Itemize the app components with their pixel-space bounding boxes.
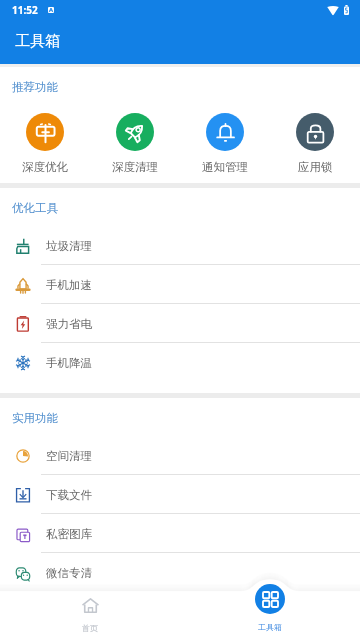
staticText: 垃圾清理 — [46, 239, 92, 253]
staticText: 深度清理 — [112, 160, 158, 174]
staticText: 深度优化 — [22, 160, 68, 174]
staticText: 工具箱 — [15, 32, 60, 51]
button[interactable]: 深度清理 — [90, 113, 180, 174]
staticText: 工具箱 — [258, 622, 282, 632]
staticText: 私密图库 — [46, 527, 92, 541]
button[interactable]: 私密图库 — [0, 514, 360, 553]
staticText: 微信专清 — [46, 566, 92, 580]
staticText: 空间清理 — [46, 449, 92, 463]
staticText: 优化工具 — [12, 201, 58, 215]
button[interactable]: 手机降温 — [0, 343, 360, 382]
button[interactable]: 首页 — [45, 598, 135, 633]
staticText: 首页 — [82, 623, 98, 633]
staticText: 推荐功能 — [12, 80, 58, 94]
button[interactable]: 应用锁 — [270, 113, 360, 174]
staticText: 手机加速 — [46, 278, 92, 292]
staticText: 强力省电 — [46, 317, 92, 331]
staticText: 手机降温 — [46, 356, 92, 370]
button[interactable]: 垃圾清理 — [0, 226, 360, 265]
button[interactable]: 深度优化 — [0, 113, 90, 174]
button[interactable]: 通知管理 — [180, 113, 270, 174]
button[interactable]: 微信专清 — [0, 553, 360, 592]
staticText: 应用锁 — [298, 160, 333, 174]
staticText: 下载文件 — [46, 488, 92, 502]
button[interactable]: 工具箱 — [225, 584, 315, 632]
button[interactable]: 空间清理 — [0, 436, 360, 475]
staticText: 通知管理 — [202, 160, 248, 174]
button[interactable]: 下载文件 — [0, 475, 360, 514]
staticText: 实用功能 — [12, 411, 58, 425]
button[interactable]: 强力省电 — [0, 304, 360, 343]
staticText: 11:52 — [12, 3, 38, 17]
button[interactable]: 手机加速 — [0, 265, 360, 304]
